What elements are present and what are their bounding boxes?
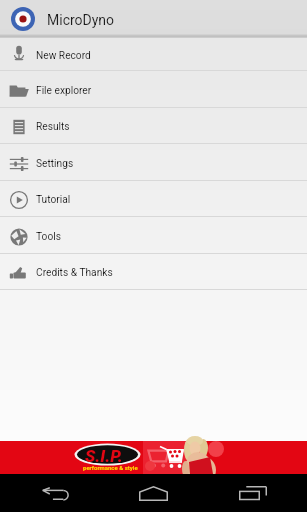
staticText: performance & style xyxy=(83,464,138,471)
staticText: File explorer xyxy=(36,85,92,97)
button[interactable]: Results xyxy=(0,108,307,144)
staticText: MicroDyno xyxy=(47,12,115,28)
staticText: S.I.P. xyxy=(85,446,123,466)
staticText: Credits & Thanks xyxy=(36,267,113,279)
staticText: Settings xyxy=(36,158,74,170)
button[interactable]: Back xyxy=(0,474,109,512)
staticText: Results xyxy=(36,121,70,133)
button[interactable]: Credits & Thanks xyxy=(0,254,307,290)
button[interactable]: Advertisement banner xyxy=(0,441,307,474)
button[interactable]: Recent apps xyxy=(198,474,307,512)
button[interactable]: File explorer xyxy=(0,71,307,108)
button[interactable]: Home xyxy=(109,474,198,512)
button[interactable]: Tutorial xyxy=(0,181,307,217)
staticText: New Record xyxy=(36,50,91,62)
button[interactable]: New Record xyxy=(0,38,307,71)
button[interactable]: Settings xyxy=(0,144,307,181)
staticText: Tools xyxy=(36,231,61,243)
button[interactable]: Tools xyxy=(0,217,307,254)
staticText: Tutorial xyxy=(36,194,71,206)
